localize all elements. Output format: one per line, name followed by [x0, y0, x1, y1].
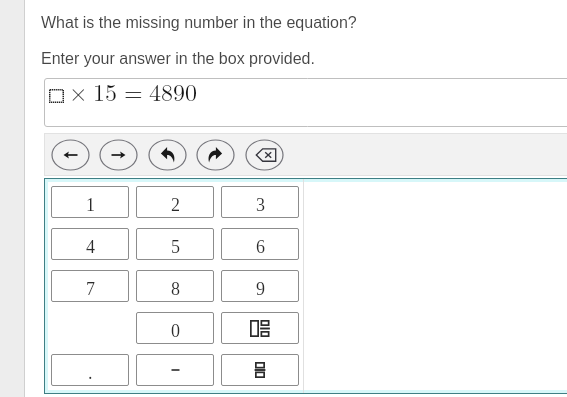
button[interactable]: 8 [136, 270, 214, 302]
button[interactable]: Move cursor left [52, 140, 89, 170]
button[interactable]: 9 [221, 270, 299, 302]
staticText: 15 [93, 74, 117, 108]
button[interactable]: Redo [197, 140, 234, 170]
staticText: 2 [171, 195, 180, 215]
button[interactable]: × [44, 78, 567, 127]
button[interactable]: Move cursor right [100, 140, 137, 170]
button[interactable]: 3 [221, 186, 299, 218]
button[interactable]: Fraction [221, 354, 299, 386]
button[interactable]: 6 [221, 228, 299, 260]
staticText: 4890 [149, 74, 197, 108]
button[interactable]: 5 [136, 228, 214, 260]
button[interactable]: Mixed number [221, 312, 299, 344]
staticText: Enter your answer in the box provided. [41, 50, 315, 68]
button[interactable]: Backspace [246, 140, 283, 170]
button[interactable]: 1 [51, 186, 129, 218]
button[interactable]: 4 [51, 228, 129, 260]
staticText: 6 [256, 237, 265, 257]
button[interactable]: 0 [136, 312, 214, 344]
staticText: 3 [256, 195, 265, 215]
staticText: What is the missing number in the equati… [41, 14, 357, 32]
staticText: 5 [171, 237, 180, 257]
staticText: × [69, 74, 88, 108]
staticText: 4 [86, 237, 95, 257]
staticText: 1 [86, 195, 95, 215]
button[interactable]: Undo [149, 140, 186, 170]
button[interactable]: . [51, 354, 129, 386]
staticText: 7 [86, 279, 95, 299]
staticText: = [124, 74, 143, 108]
staticText: . [88, 363, 93, 383]
button[interactable]: 2 [136, 186, 214, 218]
button[interactable] [136, 354, 214, 386]
staticText: 8 [171, 279, 180, 299]
staticText: 0 [171, 321, 180, 341]
button[interactable]: 7 [51, 270, 129, 302]
staticText: 9 [256, 279, 265, 299]
